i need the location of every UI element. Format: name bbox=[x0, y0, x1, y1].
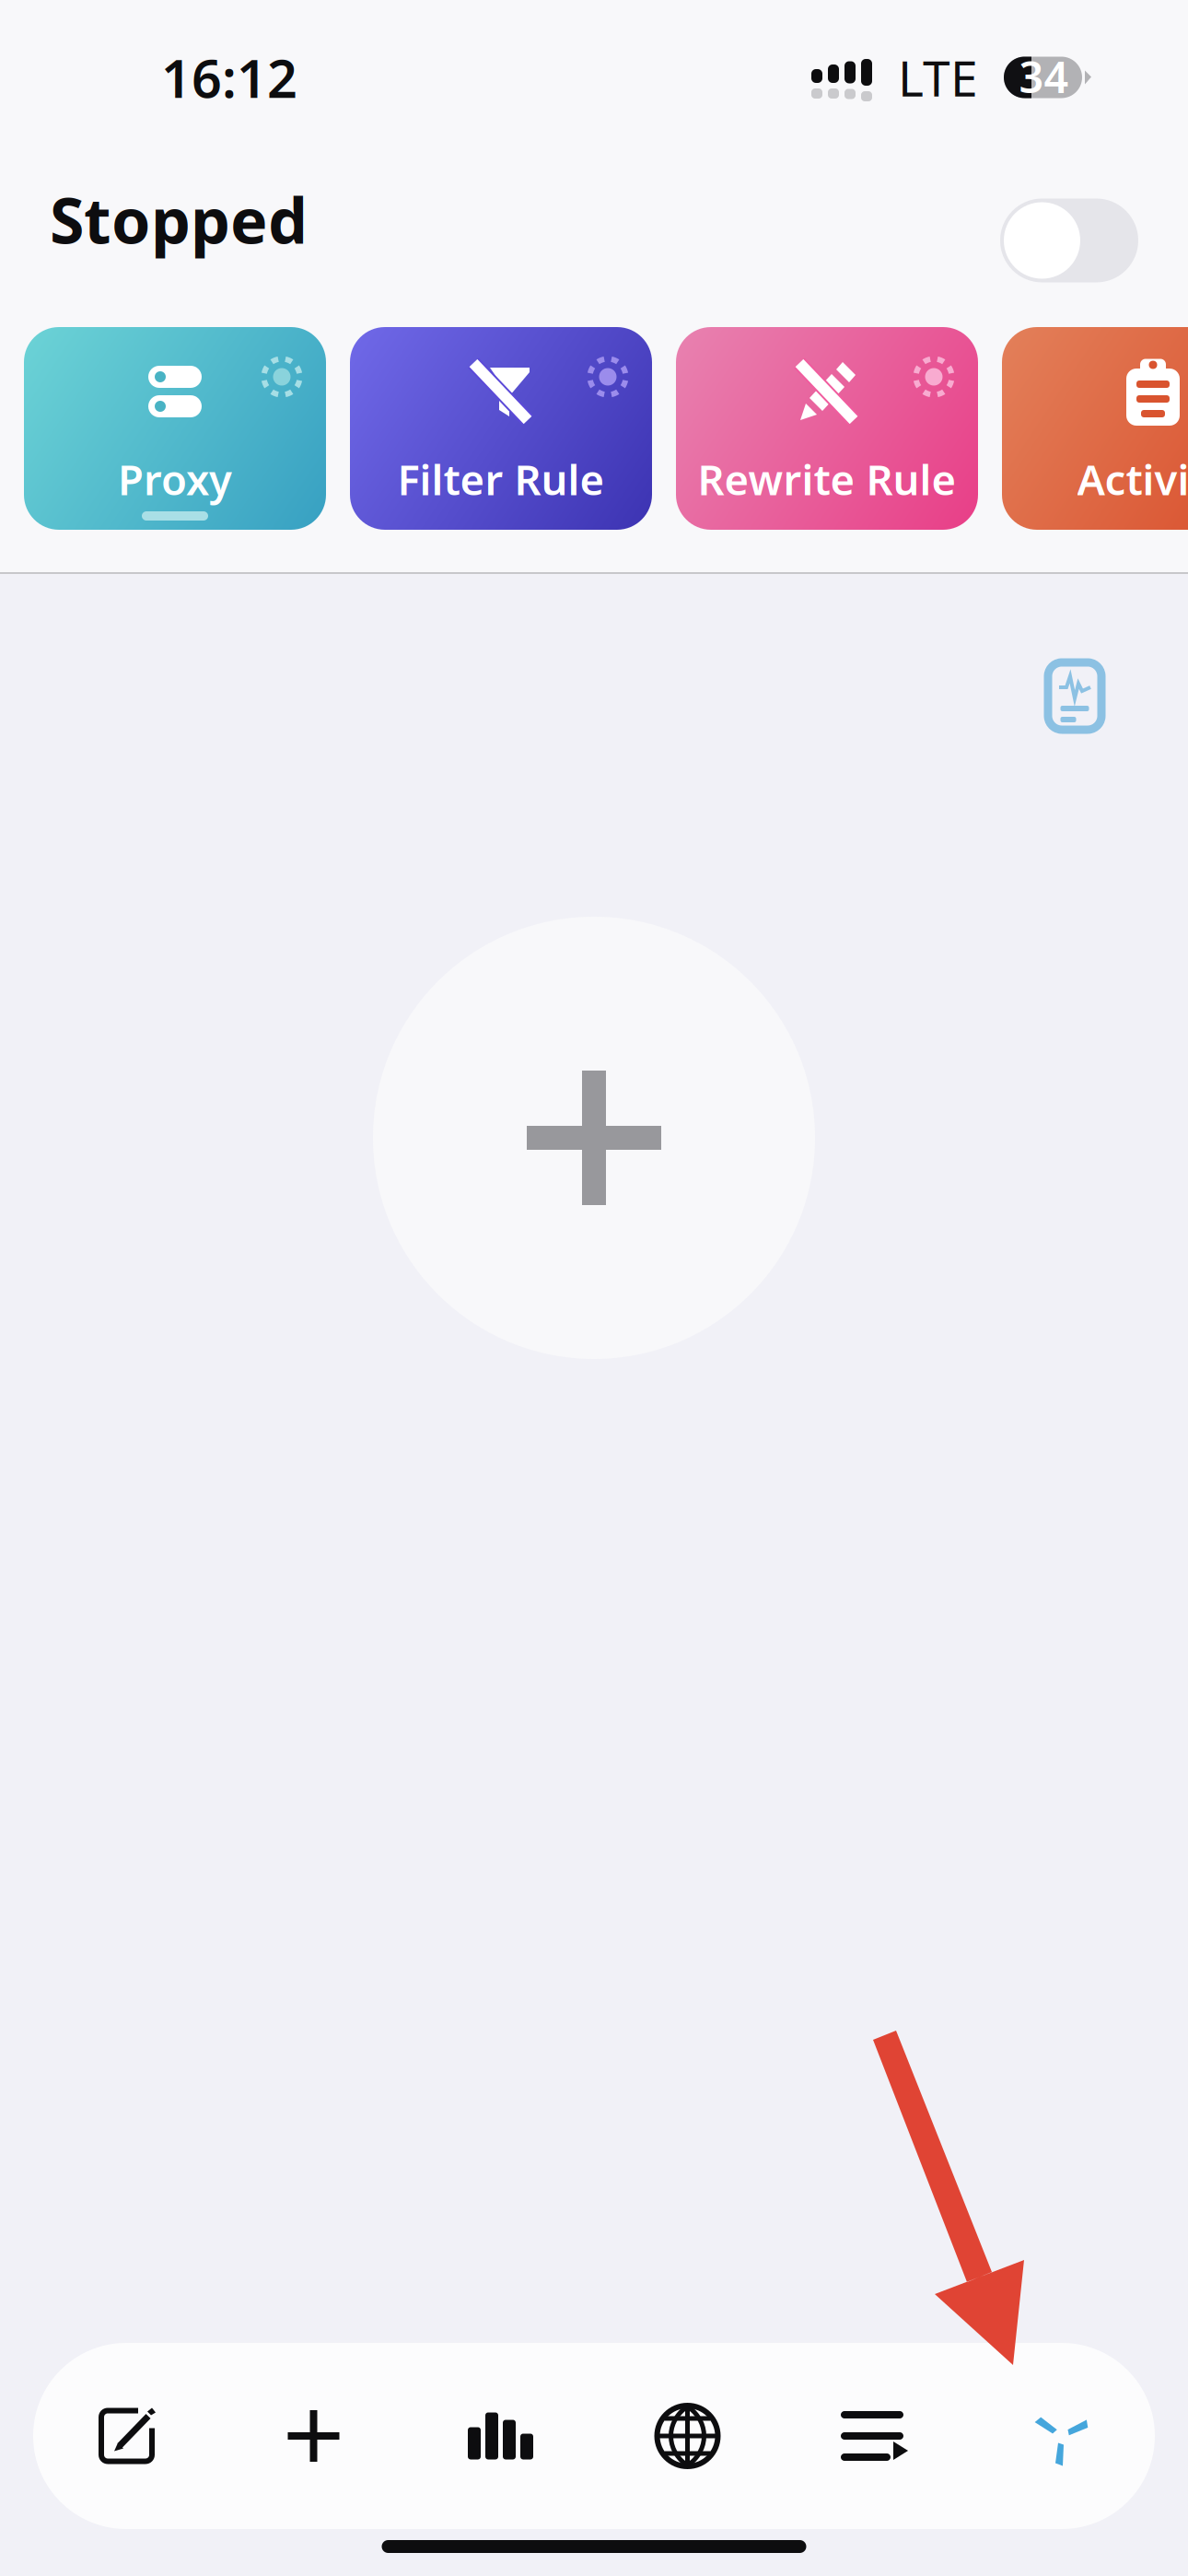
button[interactable]: Tools bbox=[968, 2343, 1155, 2529]
button[interactable]: Proxy bbox=[24, 327, 326, 530]
button[interactable]: Compose bbox=[33, 2343, 220, 2529]
button[interactable]: Request log bbox=[1046, 661, 1103, 732]
staticText: 16:12 bbox=[161, 42, 297, 112]
button[interactable]: Requests bbox=[781, 2343, 968, 2529]
staticText: Filter Rule bbox=[397, 451, 605, 507]
button[interactable]: Rewrite Rule bbox=[676, 327, 978, 530]
staticText: Rewrite Rule bbox=[698, 451, 956, 507]
button[interactable]: Statistics bbox=[407, 2343, 594, 2529]
button[interactable]: Activity bbox=[1002, 327, 1188, 530]
button[interactable]: Add bbox=[220, 2343, 407, 2529]
button[interactable]: Network bbox=[594, 2343, 781, 2529]
staticText: Proxy bbox=[118, 451, 232, 507]
staticText: 34 bbox=[1019, 48, 1069, 105]
staticText: Stopped bbox=[50, 178, 308, 261]
button[interactable]: Filter Rule bbox=[350, 327, 652, 530]
staticText: Activity bbox=[1077, 451, 1188, 507]
staticText: LTE bbox=[898, 45, 978, 110]
button[interactable]: Start proxy bbox=[1000, 199, 1138, 282]
